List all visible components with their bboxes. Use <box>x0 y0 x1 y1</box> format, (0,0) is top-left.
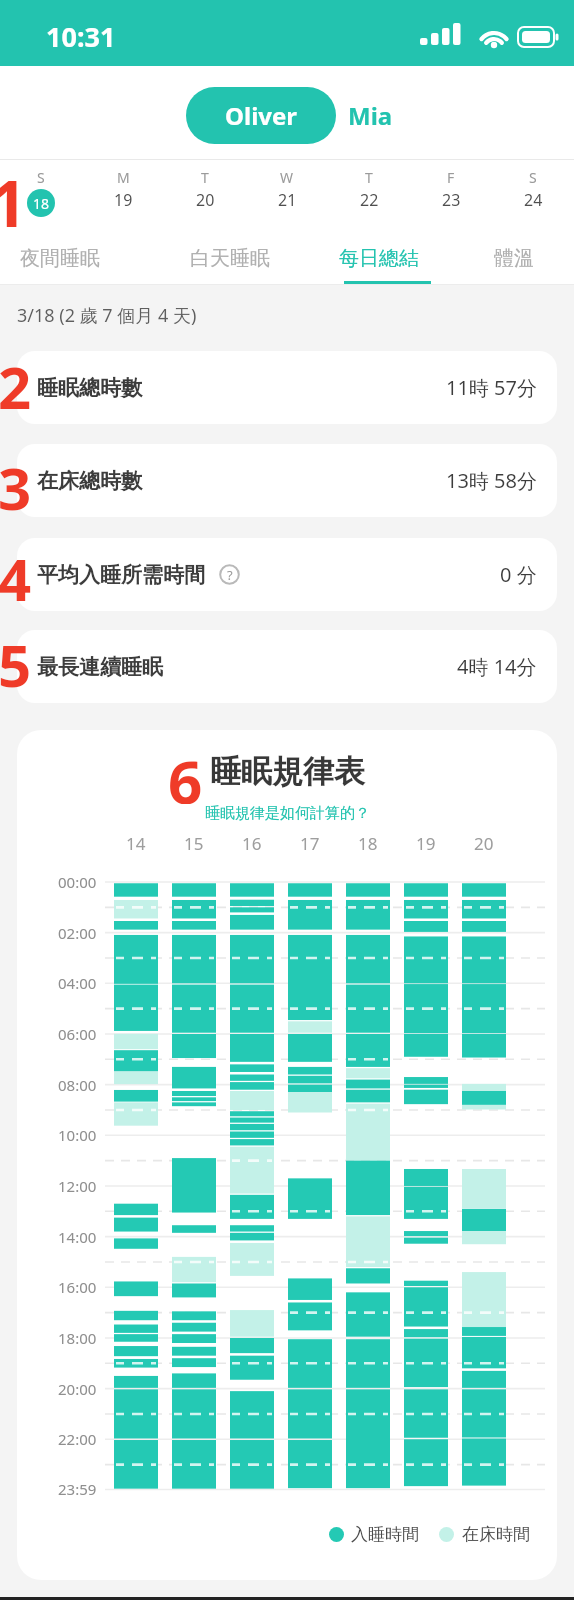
staticText: 10:00 <box>58 1125 97 1145</box>
staticText: 11時 57分 <box>446 374 537 401</box>
staticText: 0 分 <box>500 561 537 588</box>
staticText: 18 <box>33 194 50 213</box>
button[interactable]: 白天睡眠 <box>190 246 270 271</box>
staticText: 平均入睡所需時間 <box>37 562 205 588</box>
staticText: Mia <box>348 99 393 132</box>
staticText: 4時 14分 <box>457 653 537 680</box>
staticText: 04:00 <box>58 973 97 993</box>
staticText: 24 <box>524 189 543 211</box>
button[interactable]: 平均入睡所需時間 <box>17 538 557 611</box>
staticText: 12:00 <box>58 1176 97 1196</box>
staticText: 18 <box>358 832 378 855</box>
staticText: 5 <box>0 625 32 704</box>
staticText: 20 <box>474 832 494 855</box>
button[interactable]: 在床總時數 <box>17 444 557 517</box>
staticText: 06:00 <box>58 1024 97 1044</box>
staticText: 3 <box>0 448 32 527</box>
staticText: 23 <box>442 189 461 211</box>
staticText: 15 <box>184 832 204 855</box>
staticText: 4 <box>0 539 32 618</box>
staticText: 17 <box>300 832 320 855</box>
staticText: 1 <box>0 159 26 239</box>
button[interactable]: Oliver <box>186 87 336 144</box>
button[interactable]: Mia <box>344 95 397 136</box>
staticText: 00:00 <box>58 872 97 892</box>
staticText: Oliver <box>225 99 298 132</box>
button[interactable]: T <box>164 160 246 232</box>
button[interactable]: 每日總結 <box>339 246 419 271</box>
staticText: T <box>201 168 209 187</box>
button[interactable]: M <box>82 160 164 232</box>
staticText: 睡眠總時數 <box>37 375 142 401</box>
button[interactable]: W <box>246 160 328 232</box>
staticText: 18:00 <box>58 1328 97 1348</box>
staticText: 08:00 <box>58 1075 97 1095</box>
button[interactable]: F <box>410 160 492 232</box>
staticText: F <box>447 168 455 187</box>
staticText: M <box>117 168 130 187</box>
staticText: 16 <box>242 832 262 855</box>
staticText: 16:00 <box>58 1277 97 1297</box>
staticText: 02:00 <box>58 923 97 943</box>
staticText: 14 <box>126 832 146 855</box>
staticText: 21 <box>278 189 297 211</box>
staticText: ? <box>227 566 233 584</box>
button[interactable]: 睡眠總時數 <box>17 351 557 424</box>
staticText: 20 <box>196 189 215 211</box>
staticText: 6 <box>168 740 203 804</box>
button[interactable]: 夜間睡眠 <box>20 246 100 271</box>
staticText: 22 <box>360 189 379 211</box>
staticText: S <box>37 168 45 187</box>
staticText: 10:31 <box>46 18 116 55</box>
staticText: 23:59 <box>58 1479 97 1499</box>
staticText: 在床總時數 <box>37 468 142 494</box>
staticText: 3/18 (2 歲 7 個月 4 天) <box>17 303 197 328</box>
staticText: 19 <box>114 189 133 211</box>
button[interactable]: 體溫 <box>494 246 534 271</box>
staticText: 14:00 <box>58 1227 97 1247</box>
button[interactable]: S <box>0 160 82 232</box>
staticText: T <box>365 168 373 187</box>
staticText: 20:00 <box>58 1379 97 1399</box>
staticText: W <box>280 168 294 187</box>
staticText: 在床時間 <box>462 1524 530 1545</box>
button[interactable]: S <box>492 160 574 232</box>
staticText: 最長連續睡眠 <box>37 654 163 680</box>
staticText: 睡眠規律表 <box>210 752 365 791</box>
staticText: 22:00 <box>58 1429 97 1449</box>
staticText: 19 <box>416 832 436 855</box>
button[interactable]: 最長連續睡眠 <box>17 630 557 703</box>
button[interactable]: T <box>328 160 410 232</box>
staticText: 入睡時間 <box>351 1524 419 1545</box>
button[interactable]: 睡眠規律是如何計算的？ <box>205 804 370 823</box>
staticText: S <box>529 168 537 187</box>
staticText: 2 <box>0 347 32 426</box>
staticText: 13時 58分 <box>446 467 537 494</box>
